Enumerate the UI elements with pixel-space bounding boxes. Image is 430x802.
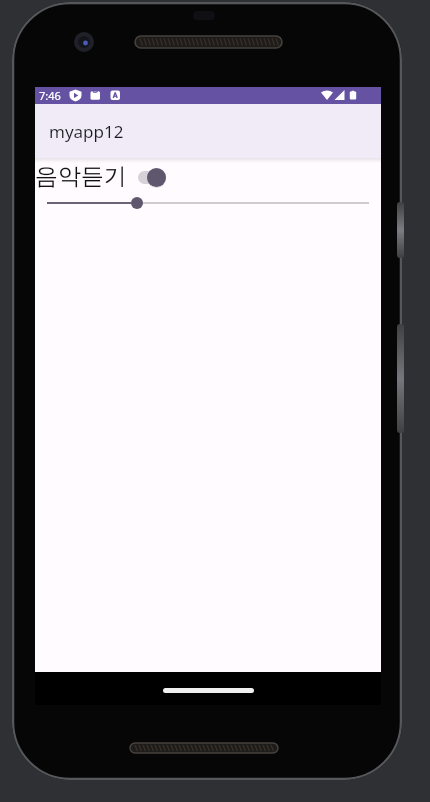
button[interactable]: 음악듣기 [35,162,127,191]
button[interactable] [163,688,254,693]
staticText: myapp12 [49,120,124,143]
button[interactable] [35,197,381,209]
button[interactable]: myapp12 [35,104,381,158]
staticText: 7:46 [39,88,61,103]
button[interactable] [138,171,166,184]
